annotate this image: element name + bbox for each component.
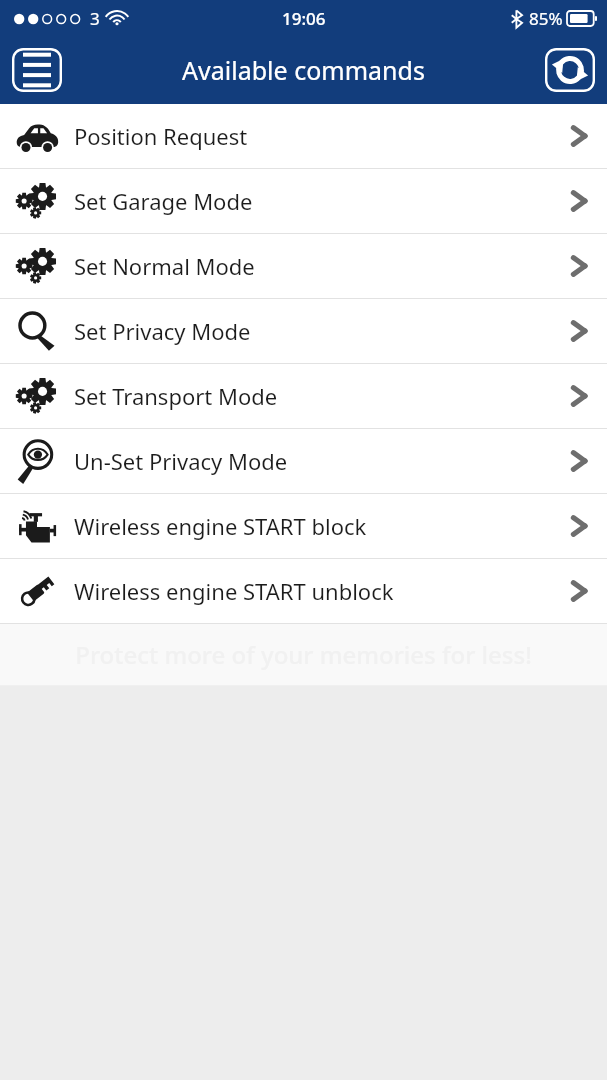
button[interactable]: Set Garage Mode <box>0 169 607 233</box>
staticText: Available commands <box>182 53 425 87</box>
staticText: Set Normal Mode <box>74 251 551 281</box>
button[interactable]: Wireless engine START block <box>0 494 607 558</box>
staticText: 3 <box>90 7 100 30</box>
button[interactable]: Position Request <box>0 104 607 168</box>
staticText: 19:06 <box>282 7 326 30</box>
staticText: Wireless engine START unblock <box>74 576 551 606</box>
button[interactable]: Set Transport Mode <box>0 364 607 428</box>
button[interactable]: Un-Set Privacy Mode <box>0 429 607 493</box>
staticText: Position Request <box>74 121 551 151</box>
staticText: Set Garage Mode <box>74 186 551 216</box>
button[interactable]: Set Privacy Mode <box>0 299 607 363</box>
button[interactable]: Menu <box>12 48 62 92</box>
staticText: Wireless engine START block <box>74 511 551 541</box>
staticText: 85% <box>529 7 563 30</box>
staticText: Set Transport Mode <box>74 381 551 411</box>
button[interactable]: Wireless engine START unblock <box>0 559 607 623</box>
staticText: Un-Set Privacy Mode <box>74 446 551 476</box>
button[interactable]: Refresh <box>545 48 595 92</box>
staticText: Set Privacy Mode <box>74 316 551 346</box>
button[interactable]: Set Normal Mode <box>0 234 607 298</box>
